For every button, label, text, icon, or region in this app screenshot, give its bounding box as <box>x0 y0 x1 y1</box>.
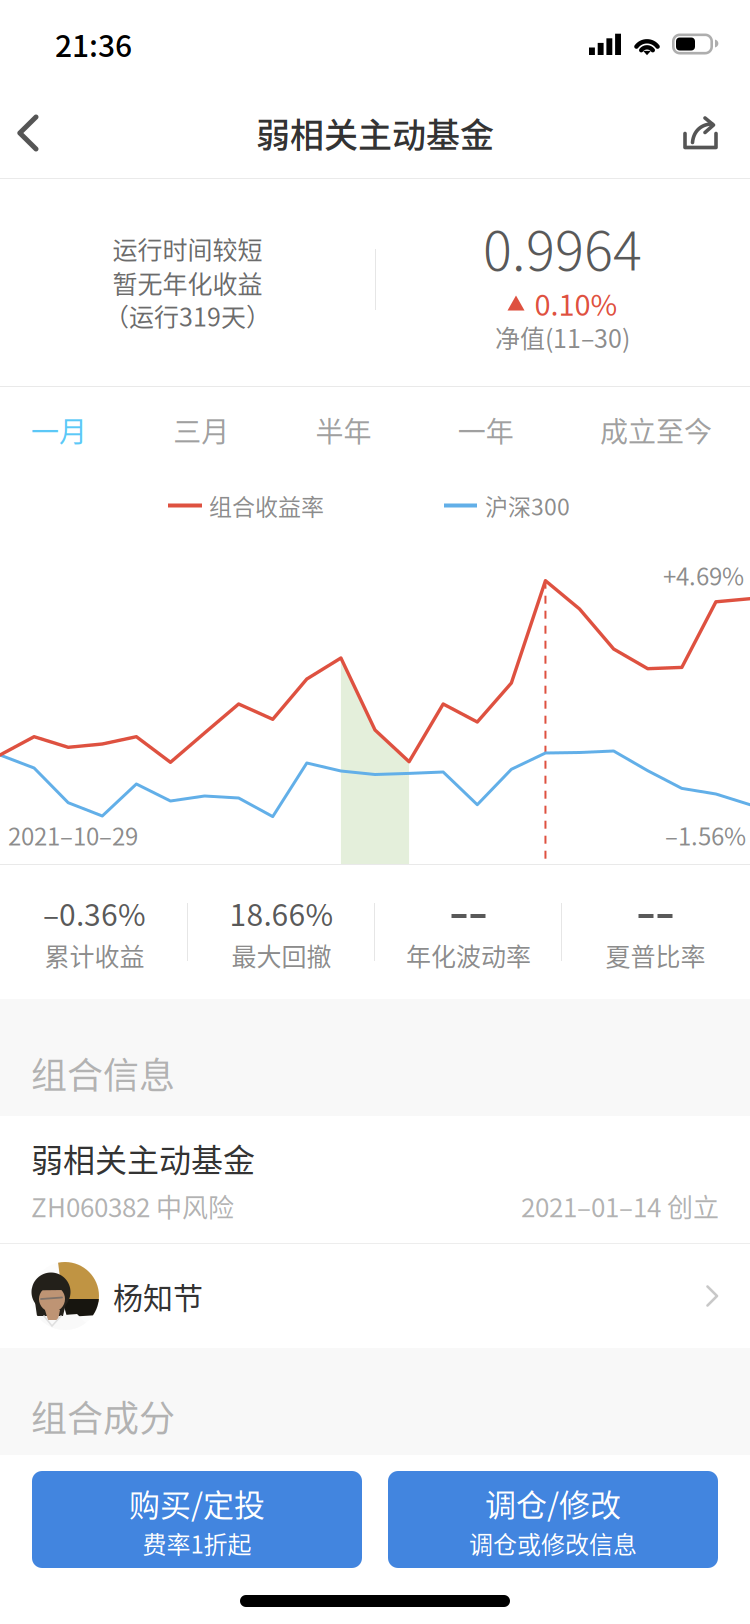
staticText: 年化波动率 <box>406 937 531 973</box>
staticText: 累计收益 <box>44 937 144 973</box>
staticText: 调仓或修改信息 <box>469 1526 637 1560</box>
staticText: –1.56% <box>665 818 746 852</box>
button[interactable]: 杨知节 <box>0 1244 750 1348</box>
staticText: +4.69% <box>663 558 744 592</box>
staticText: 夏普比率 <box>605 937 705 973</box>
button[interactable]: 三月 <box>173 387 229 473</box>
staticText: 18.66% <box>229 891 333 935</box>
staticText: 成立至今 <box>600 410 712 450</box>
staticText: 2021–10–29 <box>8 818 138 852</box>
staticText: 弱相关主动基金 <box>256 108 494 158</box>
button[interactable]: 半年 <box>315 387 371 473</box>
staticText: 0.9964 <box>483 208 642 286</box>
staticText: 运行时间较短 <box>112 230 262 267</box>
button[interactable]: 弱相关主动基金 <box>0 1116 750 1243</box>
staticText: 购买/定投 <box>129 1481 265 1525</box>
staticText: （运行319天） <box>104 297 271 334</box>
staticText: 沪深300 <box>485 489 570 522</box>
staticText: 弱相关主动基金 <box>31 1135 255 1181</box>
staticText: 0.10% <box>534 282 617 324</box>
staticText: 一年 <box>458 410 514 450</box>
button[interactable]: Back <box>0 88 90 178</box>
button[interactable]: 购买/定投 <box>32 1471 362 1568</box>
staticText: 一月 <box>31 410 87 450</box>
button[interactable]: 调仓/修改 <box>388 1471 718 1568</box>
staticText: ZH060382 中风险 <box>31 1187 234 1225</box>
staticText: 最大回撤 <box>231 937 331 973</box>
staticText: 杨知节 <box>113 1274 203 1318</box>
button[interactable]: Share <box>660 88 750 178</box>
staticText: 调仓/修改 <box>485 1481 621 1525</box>
staticText: 组合收益率 <box>209 489 324 522</box>
staticText: 三月 <box>173 410 229 450</box>
button[interactable]: 一年 <box>458 387 514 473</box>
staticText: 暂无年化收益 <box>112 264 262 301</box>
staticText: 半年 <box>315 410 371 450</box>
button[interactable]: 一月 <box>31 387 87 473</box>
staticText: 净值(11–30) <box>495 319 630 355</box>
staticText: –0.36% <box>43 891 146 935</box>
button[interactable]: 成立至今 <box>600 387 712 473</box>
staticText: 组合成分 <box>31 1390 175 1442</box>
staticText: 组合信息 <box>31 1047 175 1099</box>
staticText: 2021–01–14 创立 <box>521 1187 719 1225</box>
staticText: 21:36 <box>55 22 132 66</box>
staticText: 费率1折起 <box>142 1526 251 1560</box>
